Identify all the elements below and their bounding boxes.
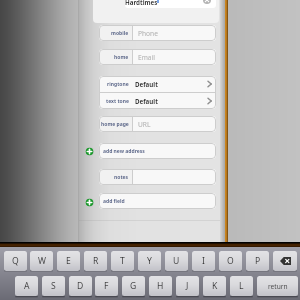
staticText: notes [114, 174, 129, 181]
staticText: J [186, 280, 189, 292]
staticText: K [212, 280, 218, 292]
button[interactable]: home [99, 49, 216, 65]
staticText: home page [101, 121, 129, 128]
staticText: ringtone [107, 81, 129, 88]
staticText: D [77, 280, 84, 292]
button[interactable]: S [42, 276, 65, 296]
button[interactable]: Clear text [203, 0, 211, 4]
staticText: E [66, 255, 71, 267]
button[interactable]: Y [138, 251, 161, 271]
staticText: F [104, 280, 109, 292]
button[interactable]: U [165, 251, 188, 271]
button[interactable]: I [192, 251, 215, 271]
staticText: add new address [103, 148, 145, 155]
staticText: S [51, 280, 56, 292]
staticText: I [202, 255, 205, 267]
button[interactable]: home page [99, 116, 216, 132]
button[interactable]: O [219, 251, 242, 271]
staticText: G [130, 280, 137, 292]
button[interactable]: P [246, 251, 269, 271]
button[interactable] [93, 0, 219, 23]
button[interactable]: T [111, 251, 134, 271]
button[interactable]: K [203, 276, 226, 296]
staticText: Email [138, 53, 155, 62]
button[interactable]: W [30, 251, 53, 271]
button[interactable]: F [95, 276, 118, 296]
button[interactable]: add field [99, 193, 216, 209]
button[interactable]: D [69, 276, 92, 296]
button[interactable]: E [57, 251, 80, 271]
button[interactable]: notes [99, 169, 216, 185]
staticText: home [114, 54, 129, 61]
staticText: P [255, 255, 261, 267]
staticText: R [93, 255, 99, 267]
staticText: O [227, 255, 234, 267]
button[interactable]: mobile [99, 25, 216, 41]
staticText: Default [135, 97, 158, 105]
button[interactable]: Backspace [273, 251, 297, 271]
staticText: U [173, 255, 180, 267]
staticText: text tone [106, 98, 129, 105]
button[interactable]: ringtone [99, 76, 216, 92]
button[interactable] [125, 0, 216, 8]
staticText: Default [135, 80, 158, 88]
button[interactable]: Q [4, 251, 27, 271]
button[interactable]: G [122, 276, 145, 296]
staticText: URL [138, 120, 151, 129]
button[interactable]: H [149, 276, 172, 296]
button[interactable]: L [230, 276, 253, 296]
button[interactable]: Add [85, 198, 94, 207]
staticText: Y [147, 255, 152, 267]
staticText: H [157, 280, 164, 292]
button[interactable]: text tone [99, 93, 216, 109]
staticText: Hardtimes [125, 0, 158, 6]
staticText: add field [103, 198, 125, 205]
staticText: L [239, 280, 244, 292]
staticText: return [268, 282, 288, 291]
button[interactable]: Add [85, 147, 94, 156]
button[interactable]: return [257, 276, 298, 296]
staticText: Q [12, 255, 19, 267]
button[interactable]: A [15, 276, 38, 296]
staticText: W [38, 255, 46, 267]
button[interactable]: J [176, 276, 199, 296]
staticText: Phone [138, 29, 158, 38]
button[interactable]: R [84, 251, 107, 271]
staticText: T [120, 255, 125, 267]
staticText: A [24, 280, 30, 292]
button[interactable]: add new address [99, 143, 216, 159]
staticText: mobile [111, 30, 129, 37]
